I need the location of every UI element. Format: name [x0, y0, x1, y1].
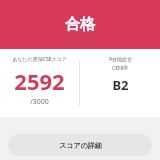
staticText: あなたの累積CSEスコア [12, 56, 67, 63]
staticText: スコアの詳細 [59, 141, 102, 150]
staticText: /3000 [30, 97, 49, 107]
button[interactable]: あなたの累積CSEスコア [0, 49, 79, 117]
staticText: 2592 [14, 66, 65, 96]
staticText: 4技能総合 [109, 56, 132, 63]
button[interactable]: 4技能総合 [80, 49, 160, 117]
staticText: CEFR® [112, 65, 128, 72]
button[interactable]: スコアの詳細 [8, 134, 152, 156]
staticText: B2 [112, 76, 129, 94]
staticText: 合格 [65, 15, 95, 34]
